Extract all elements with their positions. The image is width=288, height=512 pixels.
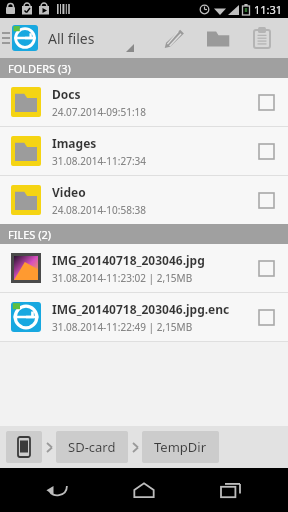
staticText: IMG_20140718_203046.jpg.enc — [52, 301, 230, 317]
staticText: 31.08.2014-11:22:49 | 2,15MB — [52, 320, 193, 334]
button[interactable]: All files — [48, 18, 152, 58]
button[interactable]: Recent apps — [201, 468, 261, 512]
button[interactable]: SD-card — [56, 431, 128, 463]
staticText: 31.08.2014-11:27:34 — [52, 154, 147, 168]
staticText: FOLDERS (3) — [8, 61, 71, 76]
button[interactable]: Images — [0, 127, 288, 175]
staticText: Docs — [52, 86, 81, 102]
button[interactable]: Open navigation — [0, 18, 38, 58]
button[interactable]: Clipboard — [240, 18, 284, 58]
button[interactable]: Edit — [152, 18, 196, 58]
staticText: Video — [52, 184, 86, 200]
staticText: All files — [48, 29, 95, 48]
button[interactable]: Home — [114, 468, 174, 512]
staticText: FILES (2) — [8, 227, 52, 242]
staticText: 31.08.2014-11:23:02 | 2,15MB — [52, 271, 193, 285]
button[interactable]: Back — [27, 468, 87, 512]
staticText: 11:31 — [254, 2, 283, 17]
staticText: Images — [52, 135, 97, 151]
button[interactable]: Select IMG_20140718_203046.jpg.enc — [244, 295, 288, 339]
button[interactable]: New folder — [196, 18, 240, 58]
button[interactable]: TempDir — [142, 431, 219, 463]
button[interactable]: Select Video — [244, 178, 288, 222]
button[interactable]: Video — [0, 176, 288, 224]
button[interactable]: Device storage — [6, 431, 42, 463]
button[interactable]: Select IMG_20140718_203046.jpg — [244, 246, 288, 290]
staticText: 24.08.2014-10:58:38 — [52, 203, 147, 217]
staticText: IMG_20140718_203046.jpg — [52, 252, 205, 268]
staticText: TempDir — [154, 438, 207, 456]
staticText: 24.07.2014-09:51:18 — [52, 105, 147, 119]
staticText: SD-card — [68, 438, 116, 456]
button[interactable]: IMG_20140718_203046.jpg.enc — [0, 293, 288, 341]
button[interactable]: Docs — [0, 78, 288, 126]
button[interactable]: Select Images — [244, 129, 288, 173]
button[interactable]: IMG_20140718_203046.jpg — [0, 244, 288, 292]
button[interactable]: Select Docs — [244, 80, 288, 124]
